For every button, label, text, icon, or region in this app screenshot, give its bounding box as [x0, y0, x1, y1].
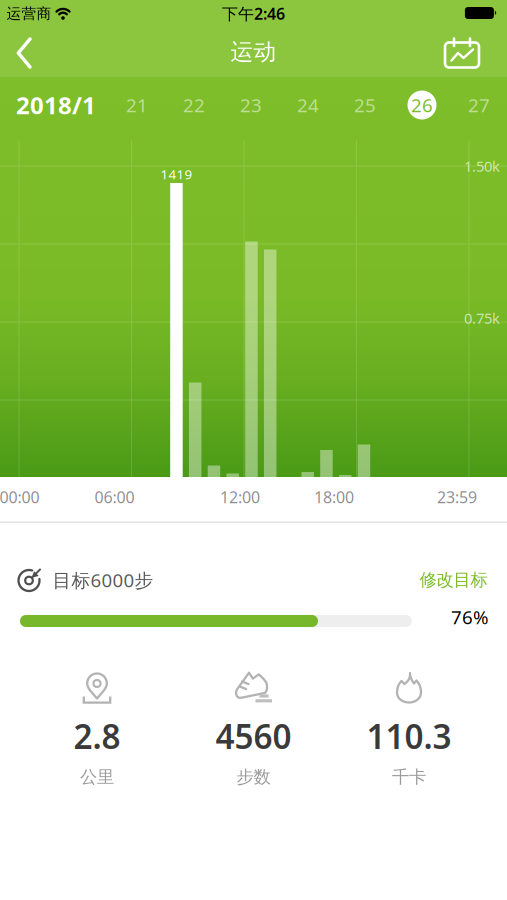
staticText: 76%: [451, 605, 489, 629]
staticText: 2018/1: [16, 89, 96, 121]
staticText: 下午2:46: [222, 3, 285, 24]
button[interactable]: 26: [400, 83, 444, 127]
staticText: 06:00: [94, 486, 134, 508]
staticText: 公里: [80, 766, 114, 788]
staticText: 目标6000步: [52, 568, 153, 592]
button[interactable]: 22: [172, 83, 216, 127]
staticText: 千卡: [392, 766, 426, 788]
button[interactable]: 21: [115, 83, 159, 127]
button[interactable]: 25: [343, 83, 387, 127]
staticText: 修改目标: [419, 569, 487, 591]
staticText: 21: [126, 93, 148, 117]
button[interactable]: 2018年1月: [16, 89, 96, 121]
staticText: 0.75k: [464, 308, 500, 328]
staticText: 运动: [230, 38, 276, 66]
staticText: 12:00: [220, 486, 260, 508]
staticText: 26: [411, 93, 433, 117]
staticText: 1419: [160, 165, 192, 183]
staticText: 1.50k: [464, 156, 500, 176]
staticText: 18:00: [314, 486, 354, 508]
staticText: 25: [354, 93, 376, 117]
button[interactable]: 修改目标: [415, 561, 491, 599]
staticText: 22: [183, 93, 205, 117]
staticText: 步数: [236, 766, 270, 788]
staticText: 运营商: [6, 4, 51, 22]
staticText: 27: [468, 93, 490, 117]
staticText: 24: [297, 93, 319, 117]
button[interactable]: 24: [286, 83, 330, 127]
button[interactable]: 23: [229, 83, 273, 127]
staticText: 23:59: [437, 486, 477, 508]
button[interactable]: 返回: [2, 28, 46, 78]
staticText: 00:00: [0, 486, 39, 508]
button[interactable]: 运动历史: [433, 27, 491, 78]
staticText: 2.8: [73, 714, 120, 758]
staticText: 4560: [215, 714, 291, 758]
staticText: 110.3: [366, 714, 451, 758]
staticText: 23: [240, 93, 262, 117]
button[interactable]: 27: [457, 83, 501, 127]
